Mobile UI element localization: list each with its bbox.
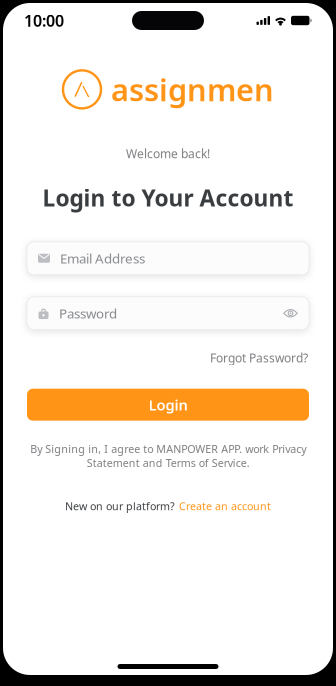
staticText: 10:00 (24, 10, 64, 31)
staticText: assignmen (111, 69, 274, 110)
button[interactable]: Show password (283, 307, 298, 319)
staticText: Welcome back! (126, 146, 210, 162)
staticText: Create an account (179, 499, 271, 513)
staticText: Login (148, 395, 187, 414)
staticText: Forgot Password? (210, 350, 308, 366)
staticText: Password (59, 304, 117, 322)
staticText: By Signing in, I agree to MANPOWER APP. … (30, 442, 306, 470)
staticText: Email Address (60, 249, 145, 267)
button[interactable]: Email Address (3, 242, 333, 275)
button[interactable]: Login (3, 389, 333, 421)
staticText: New on our platform? (65, 499, 175, 513)
button[interactable]: Create an account (179, 499, 271, 513)
staticText: Login to Your Account (42, 183, 293, 213)
button[interactable]: Forgot Password? (210, 350, 308, 366)
